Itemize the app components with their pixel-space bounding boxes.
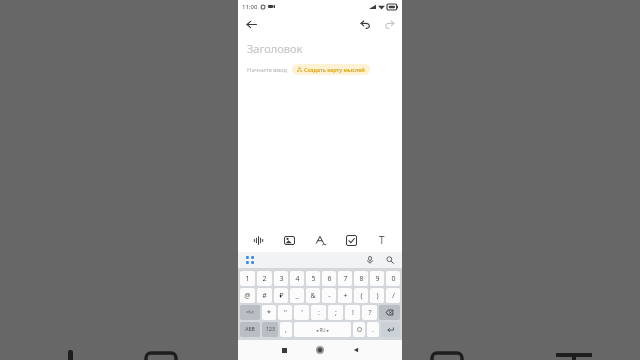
button[interactable]: 1 [240,271,255,286]
staticText: ◂ RU ▸ [316,327,329,333]
staticText: 2 [262,274,267,284]
button[interactable]: 5 [306,271,320,286]
staticText: & [310,291,316,301]
button[interactable]: Redo [380,15,398,33]
button[interactable]: # [257,288,272,303]
staticText: ₽ [279,291,284,301]
staticText: T [379,233,385,247]
staticText: Начните ввод [247,66,288,74]
staticText: =\< [246,309,254,316]
button[interactable]: 3 [274,271,288,286]
staticText: : [318,308,320,318]
button[interactable]: : [311,305,326,320]
button[interactable]: " [278,305,292,320]
staticText: АБВ [245,326,255,333]
staticText: 11:00 [242,3,258,11]
staticText: " [284,308,287,318]
button[interactable]: Emoji [353,322,365,337]
button[interactable]: ; [328,305,343,320]
staticText: 0 [391,274,396,284]
staticText: / [392,291,395,301]
button[interactable]: Text format [371,229,393,251]
staticText: # [262,291,267,301]
button[interactable]: Search [383,253,397,267]
button[interactable]: Home [309,340,331,360]
button[interactable]: * [262,305,276,320]
button[interactable]: / [386,288,400,303]
staticText: 9 [375,274,380,284]
button[interactable]: 0 [386,271,400,286]
button[interactable]: Recents [273,340,295,360]
button[interactable]: & [306,288,320,303]
button[interactable]: + [338,288,352,303]
staticText: @ [244,291,251,301]
staticText: * [267,308,271,318]
staticText: 1 [245,274,250,284]
button[interactable]: 9 [370,271,384,286]
button[interactable]: 6 [322,271,336,286]
button[interactable]: , [280,322,292,337]
button[interactable]: Keyboard menu [243,253,257,267]
button[interactable]: ? [362,305,377,320]
button[interactable]: Undo [356,15,374,33]
staticText: ' [301,308,303,318]
staticText: - [328,291,331,301]
button[interactable]: Back [242,15,260,33]
staticText: + [343,291,348,301]
button[interactable]: 2 [257,271,272,286]
button[interactable]: 4 [290,271,304,286]
button[interactable]: Voice input [363,253,377,267]
staticText: ; [335,308,337,318]
button[interactable]: ◂ RU ▸ [294,322,351,337]
button[interactable]: 7 [338,271,352,286]
staticText: ) [376,291,379,301]
button[interactable]: ( [354,288,368,303]
button[interactable]: 123 [262,322,278,337]
staticText: ? [368,308,372,318]
staticText: 8 [359,274,364,284]
button[interactable]: =\< [240,305,260,320]
button[interactable]: _ [290,288,304,303]
staticText: 3 [279,274,284,284]
staticText: 123 [266,326,275,333]
staticText: 6 [327,274,332,284]
staticText: ( [360,291,363,301]
button[interactable]: - [322,288,336,303]
button[interactable]: Создать карту мыслей [292,64,370,75]
button[interactable]: Draw [309,229,331,251]
button[interactable]: @ [240,288,255,303]
staticText: _ [295,291,299,301]
button[interactable]: Checklist [340,229,362,251]
staticText: Создать карту мыслей [304,66,365,73]
button[interactable]: ! [345,305,360,320]
button[interactable]: ) [370,288,384,303]
button[interactable]: . [367,322,379,337]
staticText: 7 [343,274,348,284]
staticText: ! [352,308,354,318]
staticText: 4 [295,274,300,284]
staticText: Заголовок [247,41,303,56]
button[interactable]: 8 [354,271,368,286]
button[interactable]: Backspace [379,305,400,320]
button[interactable]: ₽ [274,288,288,303]
staticText: 5 [311,274,316,284]
staticText: , [285,325,287,335]
button[interactable]: Back [345,340,367,360]
button[interactable]: Image [278,229,300,251]
button[interactable]: Enter [381,322,400,337]
button[interactable]: АБВ [240,322,260,337]
button[interactable]: Audio [247,229,269,251]
button[interactable]: ' [294,305,309,320]
staticText: . [372,325,374,335]
